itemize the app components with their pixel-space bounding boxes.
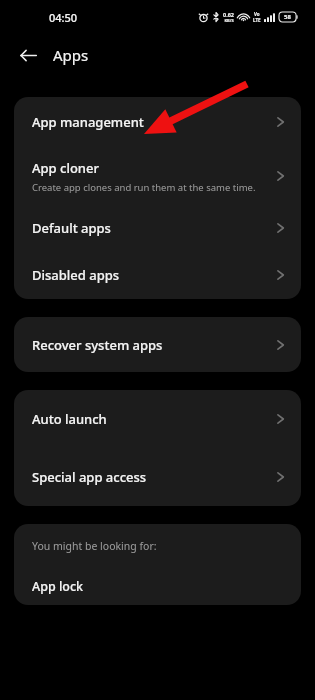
staticText: LTE [253, 17, 261, 23]
staticText: Create app clones and run them at the sa… [32, 181, 256, 194]
staticText: 58 [284, 13, 291, 21]
button[interactable]: Default apps [14, 205, 301, 250]
button[interactable]: Back [12, 39, 44, 71]
staticText: Apps [53, 45, 89, 65]
staticText: Vo [254, 11, 260, 17]
staticText: App cloner [32, 159, 99, 177]
staticText: Auto launch [32, 410, 107, 428]
staticText: App management [32, 113, 144, 131]
button[interactable]: Special app access [14, 448, 301, 506]
staticText: You might be looking for: [32, 539, 157, 553]
button[interactable]: App cloner [14, 147, 301, 205]
staticText: Recover system apps [32, 336, 163, 354]
staticText: Disabled apps [32, 266, 120, 284]
button[interactable]: Auto launch [14, 390, 301, 448]
staticText: Special app access [32, 468, 147, 486]
staticText: 04:50 [49, 10, 78, 25]
staticText: App lock [32, 578, 84, 595]
button[interactable]: App management [14, 97, 301, 147]
button[interactable]: App lock [14, 567, 301, 605]
button[interactable]: Disabled apps [14, 250, 301, 299]
staticText: 0.62 [223, 11, 234, 18]
button[interactable]: Recover system apps [14, 317, 301, 372]
staticText: Default apps [32, 219, 111, 237]
staticText: KB/S [224, 18, 234, 23]
